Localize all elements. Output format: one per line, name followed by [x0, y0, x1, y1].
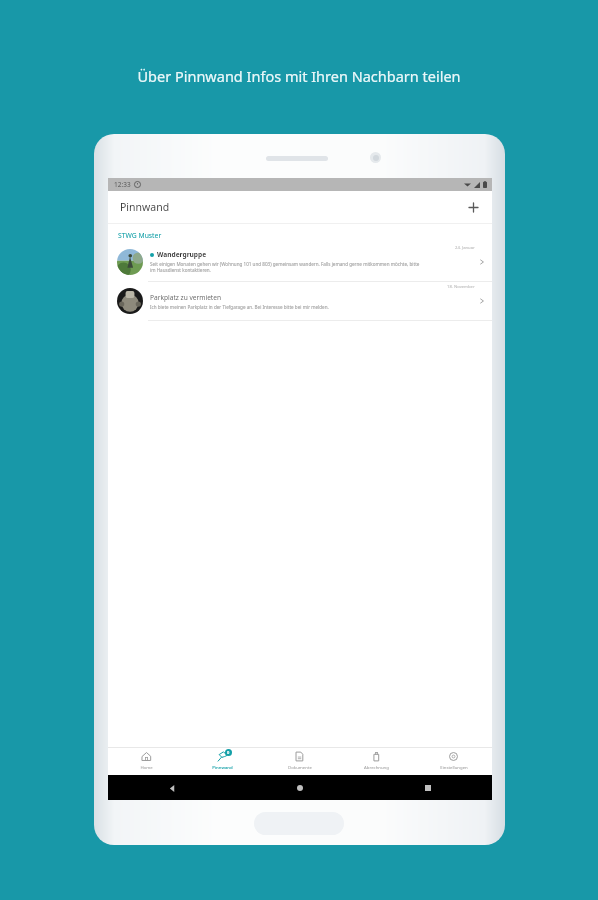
staticText: Pinnwand	[120, 200, 170, 214]
staticText: Einstellungen	[440, 764, 468, 770]
staticText: Home	[140, 764, 153, 770]
button[interactable]: Back	[162, 778, 182, 798]
staticText: Über Pinnwand Infos mit Ihren Nachbarn t…	[137, 66, 461, 86]
button[interactable]: Recents	[418, 778, 438, 798]
staticText: Wandergruppe	[157, 250, 207, 259]
staticText: 0	[227, 750, 230, 755]
staticText: 12:33	[114, 180, 131, 189]
staticText: 18. November	[447, 284, 475, 290]
staticText: Parkplatz zu vermieten	[150, 293, 222, 302]
button[interactable]: Home	[108, 748, 184, 775]
staticText: Seit einigen Monaten gehen wir (Wohnung …	[150, 261, 420, 274]
button[interactable]: Parkplatz zu vermieten	[108, 282, 492, 320]
staticText: Dokumente	[288, 764, 312, 770]
staticText: Ich biete meinen Parkplatz in der Tiefga…	[150, 304, 329, 310]
button[interactable]: Wandergruppe	[108, 243, 492, 281]
button[interactable]: Home	[290, 778, 310, 798]
staticText: STWG Muster	[118, 231, 162, 240]
staticText: Pinnwand	[212, 764, 233, 770]
button[interactable]: Einstellungen	[415, 748, 492, 775]
button[interactable]: Abrechnung	[338, 748, 415, 775]
button[interactable]: 0	[184, 748, 261, 775]
staticText: 24. Januar	[455, 245, 475, 251]
staticText: Abrechnung	[364, 764, 389, 770]
button[interactable]: Dokumente	[261, 748, 338, 775]
button[interactable]: Neuer Beitrag	[462, 196, 484, 218]
